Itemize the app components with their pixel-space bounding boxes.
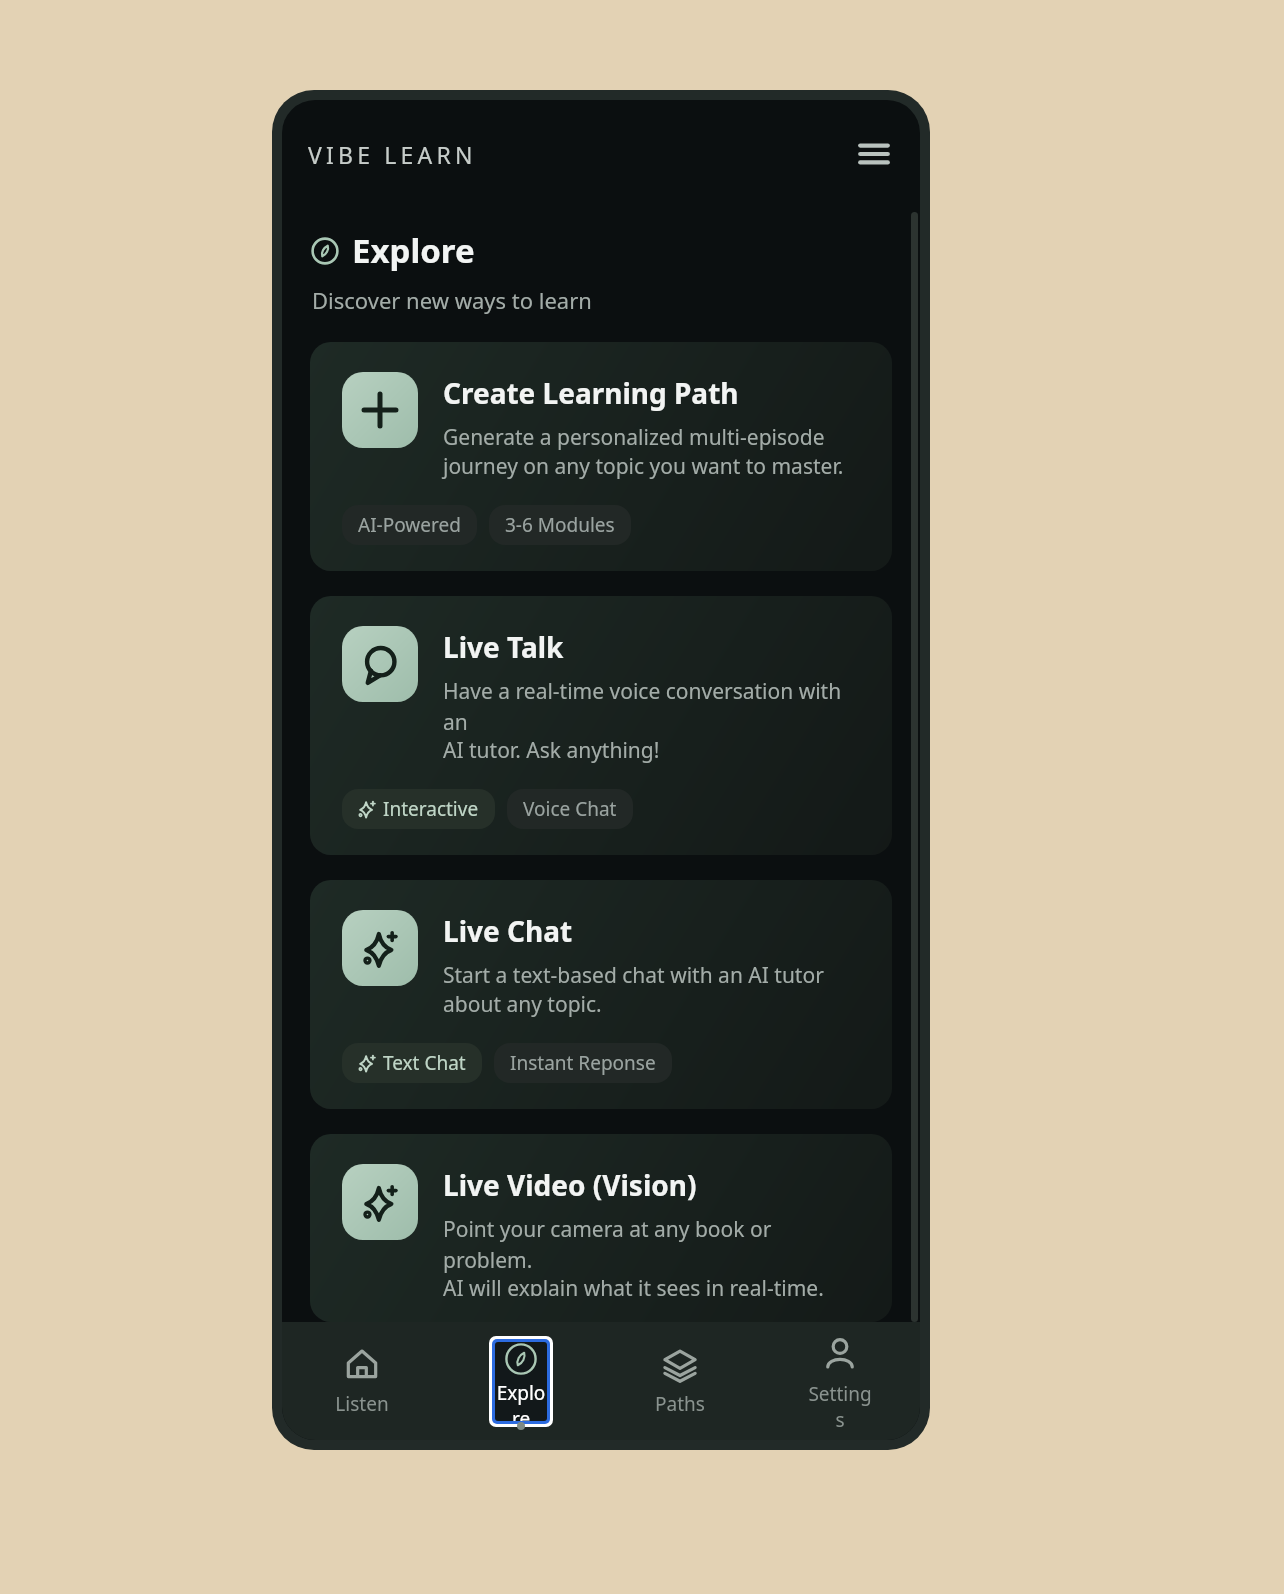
button[interactable]: Paths [648,1336,712,1427]
button[interactable]: Live Chat [310,880,892,1109]
staticText: VIBE LEARN [308,139,477,170]
staticText: journey on any topic you want to master. [443,452,844,481]
button[interactable]: Create Learning Path [310,342,892,571]
staticText: 3-6 Modules [505,512,615,538]
staticText: AI tutor. Ask anything! [443,736,660,765]
staticText: Listen [335,1391,389,1417]
button[interactable]: Live Video (Vision) [310,1134,892,1322]
button[interactable]: Text Chat [342,1043,482,1083]
staticText: Have a real-time voice conversation with… [443,677,866,736]
staticText: AI will explain what it sees in real-tim… [443,1274,824,1296]
staticText: Explore [495,1380,547,1421]
button[interactable]: Live Talk [310,596,892,855]
staticText: AI-Powered [358,512,461,538]
staticText: Create Learning Path [443,374,739,412]
staticText: about any topic. [443,990,602,1019]
staticText: Paths [655,1391,705,1417]
button[interactable]: Instant Reponse [494,1043,672,1083]
staticText: Point your camera at any book or problem… [443,1215,866,1274]
button[interactable]: AI-Powered [342,505,477,545]
staticText: Interactive [383,796,479,822]
staticText: Text Chat [383,1050,466,1076]
button[interactable]: Settings [808,1336,872,1427]
staticText: Discover new ways to learn [312,285,592,315]
button[interactable]: Explore [495,1342,547,1421]
button[interactable]: Interactive [342,789,495,829]
staticText: Live Video (Vision) [443,1166,697,1204]
staticText: Voice Chat [523,796,617,822]
staticText: Instant Reponse [510,1050,656,1076]
button[interactable]: Listen [330,1336,394,1427]
staticText: Explore [352,228,475,273]
button[interactable]: Voice Chat [507,789,633,829]
button[interactable]: Menu [850,130,898,178]
staticText: Live Chat [443,912,573,950]
button[interactable]: 3-6 Modules [489,505,631,545]
staticText: Settings [808,1381,872,1427]
staticText: Start a text-based chat with an AI tutor [443,961,824,990]
staticText: Live Talk [443,628,564,666]
staticText: Generate a personalized multi-episode [443,423,825,452]
